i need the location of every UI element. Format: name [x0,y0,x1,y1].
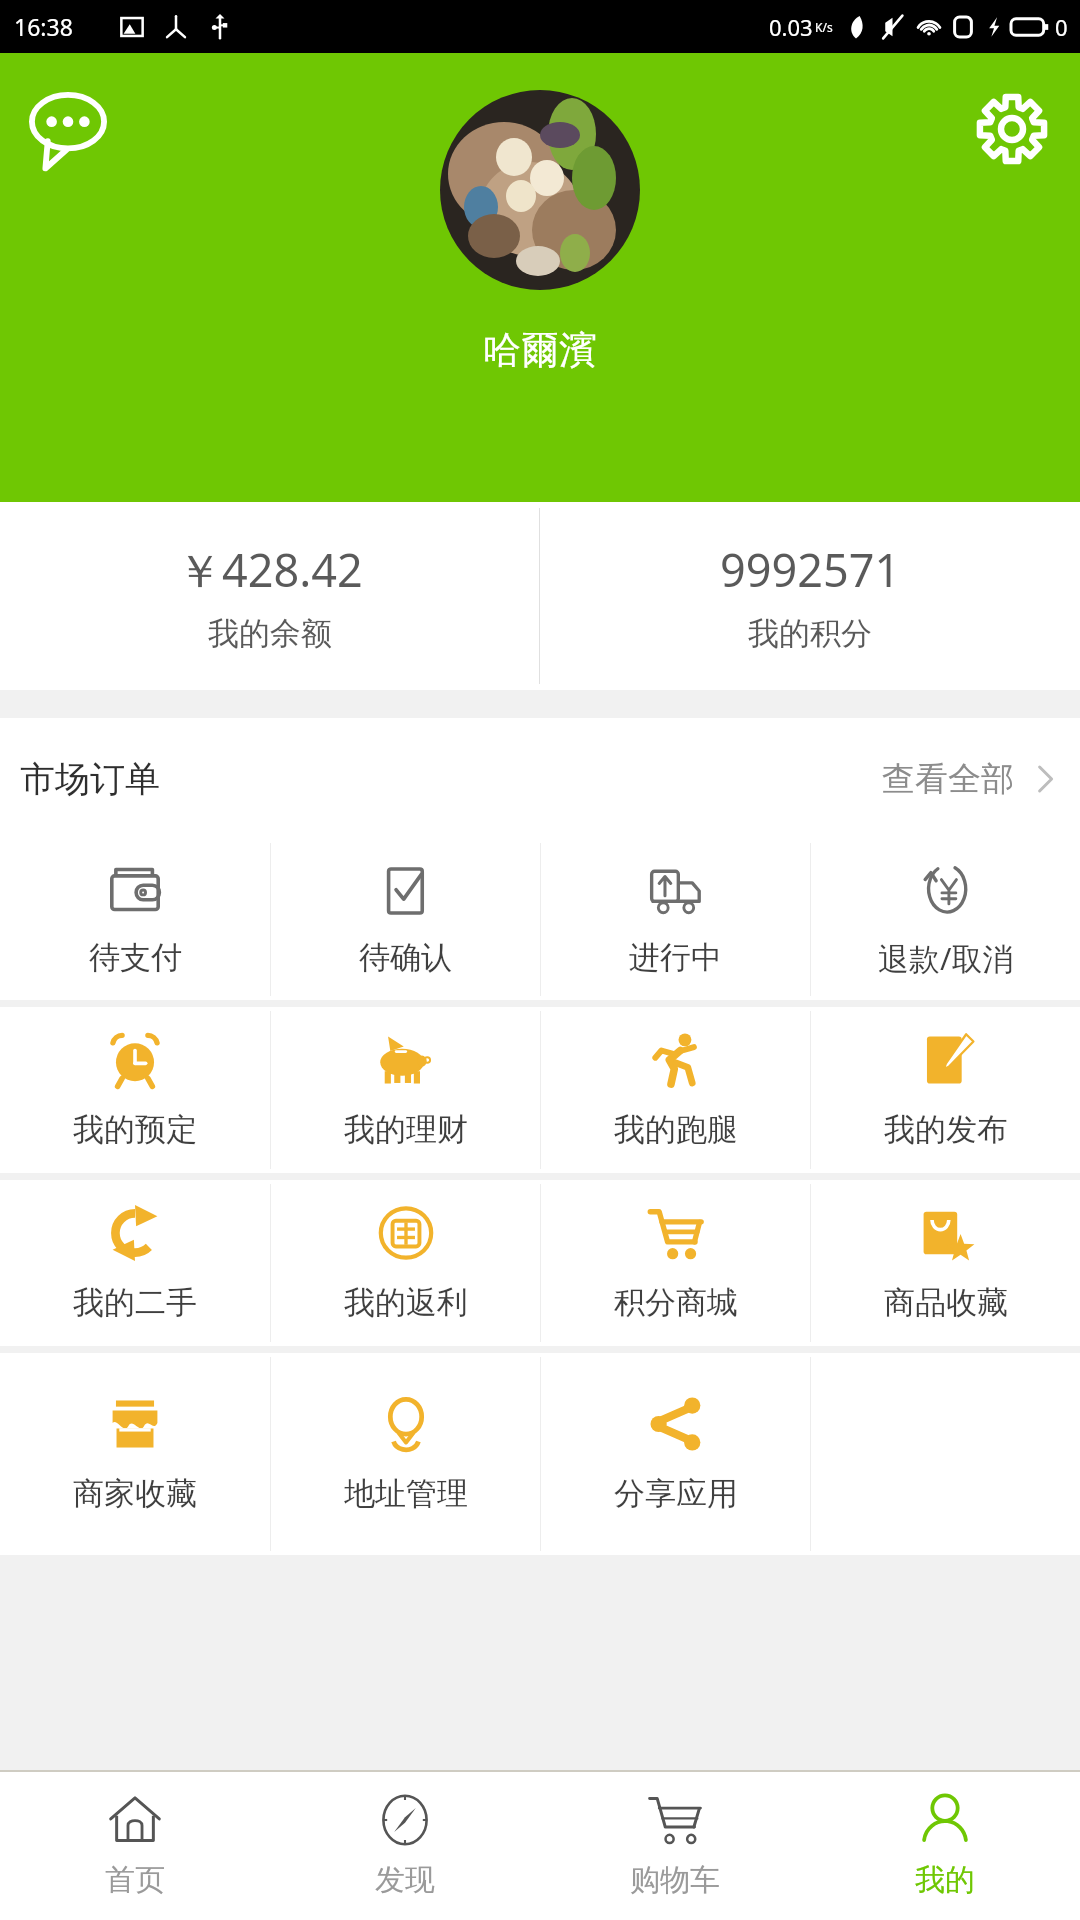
staticText: 商品收藏 [884,1283,1008,1322]
button[interactable]: ￥428.42 [0,502,539,690]
button[interactable]: 积分商城 [541,1180,810,1346]
staticText: 退款/取消 [878,937,1014,979]
button[interactable]: 发现 [270,1772,540,1920]
staticText: 分享应用 [614,1474,738,1513]
staticText: 我的发布 [884,1110,1008,1149]
staticText: 我的余额 [208,614,332,653]
button[interactable]: 我的预定 [0,1007,270,1173]
staticText: 哈爾濱 [483,326,597,374]
staticText: 0 [1055,12,1068,42]
staticText: 我的二手 [73,1283,197,1322]
staticText: 进行中 [629,938,722,977]
button[interactable]: Profile photo [440,90,640,290]
staticText: 商家收藏 [73,1474,197,1513]
staticText: 16:38 [14,11,73,42]
staticText: 待支付 [89,938,182,977]
button[interactable]: 商家收藏 [0,1353,270,1555]
button[interactable]: 待确认 [271,839,540,1000]
staticText: 待确认 [359,938,452,977]
staticText: 积分商城 [614,1283,738,1322]
staticText: 地址管理 [344,1474,468,1513]
staticText: 查看全部 [882,758,1014,800]
button[interactable]: 市场订单 [0,718,1080,839]
button[interactable]: 购物车 [540,1772,810,1920]
button[interactable]: 首页 [0,1772,270,1920]
staticText: 我的 [915,1861,975,1899]
button[interactable]: 我的 [810,1772,1080,1920]
staticText: ￥428.42 [177,539,363,600]
staticText: 0.03 [769,12,813,42]
staticText: 我的跑腿 [614,1110,738,1149]
button[interactable]: Messages [20,83,116,179]
staticText: 市场订单 [20,757,160,801]
button[interactable]: 9992571 [540,502,1080,690]
staticText: 9992571 [720,539,901,600]
button[interactable]: 我的发布 [811,1007,1080,1173]
button[interactable]: 进行中 [541,839,810,1000]
staticText: 购物车 [630,1861,720,1899]
button[interactable]: Settings [964,81,1060,177]
staticText: 我的预定 [73,1110,197,1149]
staticText: 发现 [375,1861,435,1899]
button[interactable]: 我的二手 [0,1180,270,1346]
button[interactable]: 地址管理 [271,1353,540,1555]
button[interactable]: 退款/取消 [811,839,1080,1000]
button[interactable]: 待支付 [0,839,270,1000]
staticText: 我的返利 [344,1283,468,1322]
button[interactable]: 分享应用 [541,1353,810,1555]
staticText: K/s [815,19,833,35]
button[interactable]: 我的返利 [271,1180,540,1346]
button[interactable]: 我的理财 [271,1007,540,1173]
staticText: 首页 [105,1861,165,1899]
button[interactable]: 商品收藏 [811,1180,1080,1346]
staticText: 我的理财 [344,1110,468,1149]
staticText: 我的积分 [748,614,872,653]
button[interactable]: 我的跑腿 [541,1007,810,1173]
